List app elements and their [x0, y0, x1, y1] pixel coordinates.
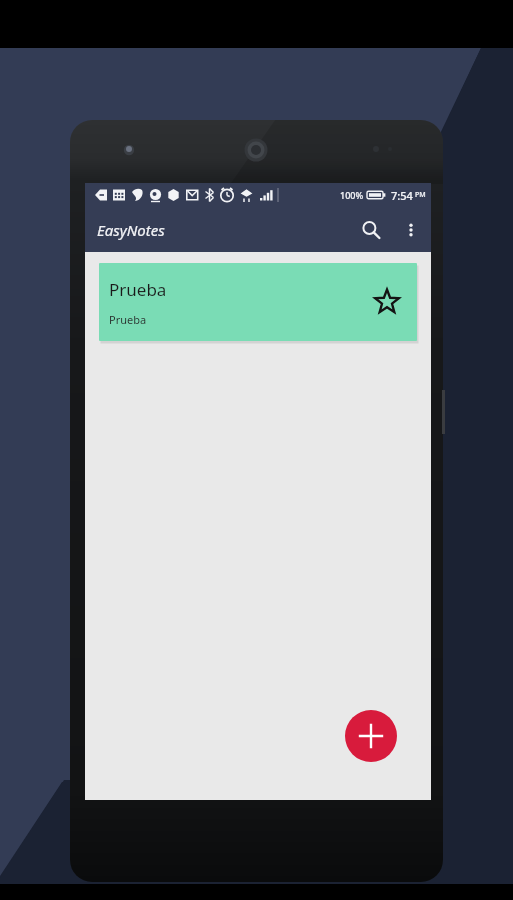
staticText: Prueba	[109, 278, 167, 301]
staticText: 7:54	[391, 188, 413, 203]
staticText: 100%	[340, 189, 364, 201]
staticText: PM	[415, 190, 426, 200]
button[interactable]: Prueba	[99, 263, 417, 341]
staticText: Prueba	[109, 312, 147, 327]
button[interactable]: Add note	[345, 710, 397, 762]
staticText: EasyNotes	[97, 220, 165, 240]
button[interactable]: Favourite	[367, 282, 407, 322]
button[interactable]: More options	[391, 210, 431, 250]
button[interactable]: Search	[351, 210, 391, 250]
